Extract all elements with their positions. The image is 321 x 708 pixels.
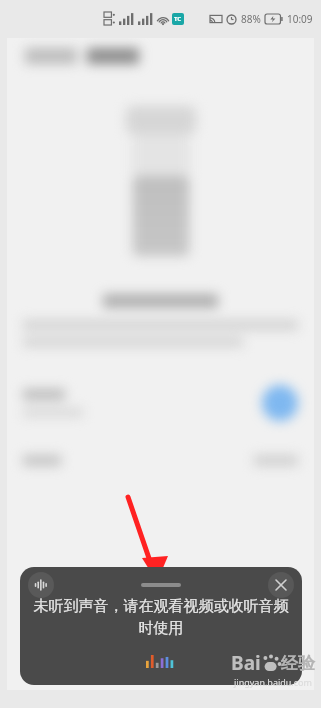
staticText: 88% (241, 12, 261, 26)
staticText: 经验 (281, 653, 315, 674)
staticText: Bai (231, 650, 261, 676)
button[interactable]: Close (268, 572, 294, 598)
staticText: TC (174, 15, 182, 23)
staticText: 未听到声音，请在观看视频或收听音频时使用 (28, 597, 294, 638)
staticText: 10:09 (287, 12, 313, 26)
staticText: 字幕 (21, 660, 51, 679)
staticText: jingyan.baidu.com (234, 676, 312, 688)
button[interactable]: 声音源语言 (7, 606, 314, 648)
button[interactable]: Voice input (28, 572, 54, 598)
button[interactable]: 字幕 (7, 648, 314, 690)
